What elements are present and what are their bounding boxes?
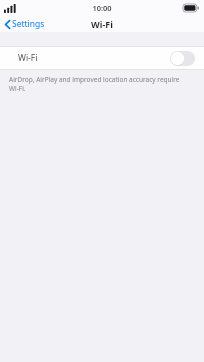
staticText: Settings	[12, 18, 45, 30]
staticText: AirDrop, AirPlay and improved location a…	[9, 75, 186, 93]
button[interactable]: Wi-Fi toggle, off	[170, 51, 195, 66]
staticText: Wi-Fi	[91, 18, 113, 30]
button[interactable]: Wi-Fi	[0, 47, 204, 69]
button[interactable]: Settings	[0, 16, 51, 32]
staticText: Wi-Fi	[18, 52, 38, 64]
staticText: 10:00	[92, 3, 112, 13]
